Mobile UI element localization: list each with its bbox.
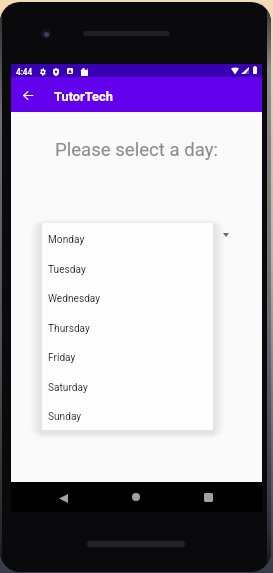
staticText: Monday bbox=[48, 234, 85, 246]
staticText: Sunday bbox=[48, 411, 82, 423]
button[interactable]: Sunday bbox=[42, 400, 213, 430]
staticText: Saturday bbox=[48, 382, 88, 394]
button[interactable]: Back bbox=[52, 487, 74, 509]
button[interactable]: Friday bbox=[42, 341, 213, 371]
staticText: TutorTech bbox=[54, 89, 113, 104]
staticText: Thursday bbox=[48, 323, 90, 335]
button[interactable]: Monday bbox=[42, 223, 213, 253]
button[interactable]: Wednesday bbox=[42, 282, 213, 312]
button[interactable]: Thursday bbox=[42, 312, 213, 342]
staticText: 4:44 bbox=[16, 67, 33, 77]
button[interactable]: Tuesday bbox=[42, 253, 213, 283]
button[interactable]: Saturday bbox=[42, 371, 213, 401]
staticText: Tuesday bbox=[48, 264, 86, 276]
staticText: Friday bbox=[48, 352, 76, 364]
button[interactable]: Home bbox=[125, 486, 147, 508]
button[interactable]: Navigate up bbox=[16, 84, 39, 107]
staticText: Please select a day: bbox=[11, 139, 262, 161]
button[interactable]: Recent apps bbox=[197, 486, 219, 508]
staticText: Wednesday bbox=[48, 293, 101, 305]
